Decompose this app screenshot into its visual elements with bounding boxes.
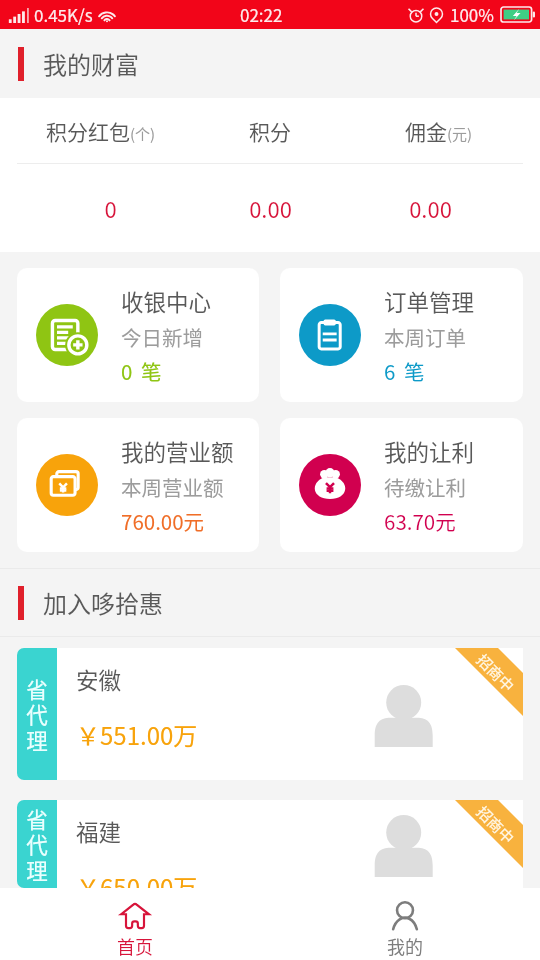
button[interactable]: 我的 <box>270 888 540 960</box>
staticText: 订单管理 <box>384 285 475 318</box>
staticText: ￥650.00万 <box>76 869 198 888</box>
staticText: 加入哆拾惠 <box>43 585 163 620</box>
staticText: 0.00 <box>249 192 292 224</box>
staticText: 佣金 <box>405 116 447 146</box>
button[interactable]: 收银中心 <box>17 268 259 402</box>
staticText: 63.70元 <box>384 506 456 536</box>
staticText: 今日新增 <box>121 322 203 352</box>
staticText: 笔 <box>404 356 425 386</box>
staticText: 招商中 <box>472 801 520 849</box>
staticText: 我的让利 <box>384 435 475 468</box>
button[interactable]: 订单管理 <box>280 268 523 402</box>
staticText: ￥551.00万 <box>76 717 198 752</box>
button[interactable]: 省 代 理 <box>17 648 523 780</box>
staticText: 首页 <box>117 933 153 959</box>
staticText: 0.45K/s <box>34 2 93 27</box>
button[interactable]: 首页 <box>0 888 270 960</box>
staticText: 待缴让利 <box>384 472 466 502</box>
button[interactable]: 省 代 理 <box>17 800 523 888</box>
staticText: 0.00 <box>409 192 452 224</box>
staticText: 6 <box>384 356 396 386</box>
staticText: 我的 <box>387 933 423 959</box>
staticText: 02:22 <box>240 2 283 27</box>
staticText: 福建 <box>76 815 122 848</box>
staticText: 省 代 理 <box>26 803 48 886</box>
staticText: (个) <box>130 123 156 145</box>
staticText: 100% <box>450 2 494 27</box>
staticText: 0 <box>104 192 117 224</box>
staticText: 笔 <box>141 356 162 386</box>
staticText: 我的营业额 <box>121 435 234 468</box>
staticText: 积分红包 <box>46 116 130 146</box>
staticText: 收银中心 <box>121 285 212 318</box>
staticText: 本周营业额 <box>121 472 224 502</box>
staticText: 本周订单 <box>384 322 466 352</box>
staticText: 0 <box>121 356 133 386</box>
staticText: 安徽 <box>76 663 122 696</box>
staticText: 招商中 <box>472 649 520 697</box>
staticText: 积分 <box>249 116 291 146</box>
button[interactable]: 我的让利 <box>280 418 523 552</box>
staticText: (元) <box>447 123 473 145</box>
staticText: 省 代 理 <box>26 673 48 756</box>
button[interactable]: 我的营业额 <box>17 418 259 552</box>
staticText: 我的财富 <box>43 46 139 81</box>
staticText: 760.00元 <box>121 506 205 536</box>
